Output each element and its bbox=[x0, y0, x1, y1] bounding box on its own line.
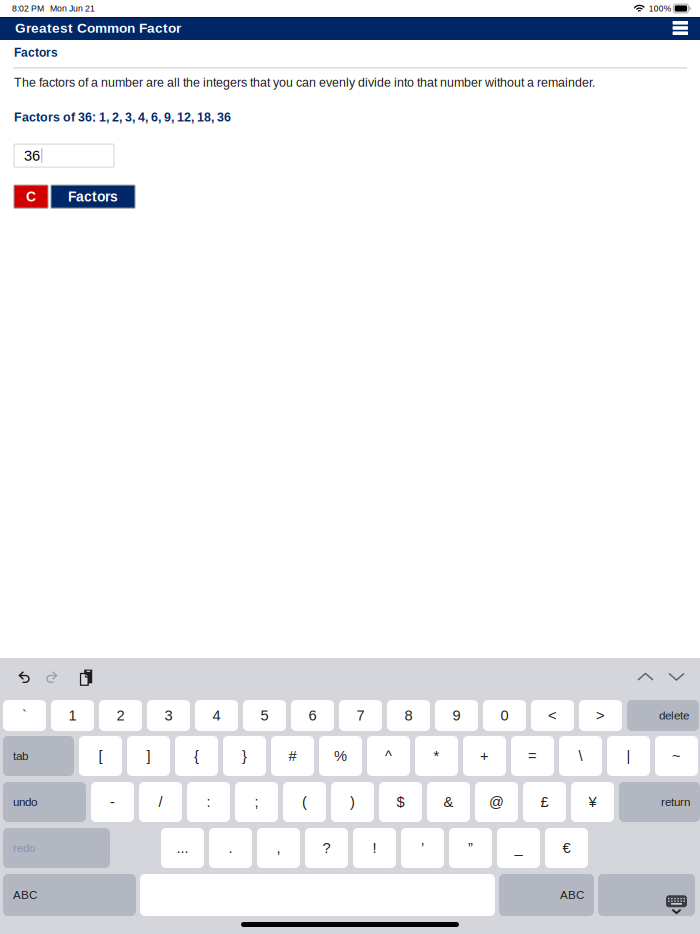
button[interactable]: | bbox=[607, 736, 650, 776]
button[interactable]: 8 bbox=[387, 700, 430, 731]
button[interactable]: # bbox=[271, 736, 314, 776]
button[interactable]: ^ bbox=[367, 736, 410, 776]
staticText: * bbox=[433, 748, 439, 764]
button[interactable]: Hide keyboard bbox=[598, 874, 695, 916]
staticText: 0 bbox=[500, 707, 508, 724]
staticText: ( bbox=[302, 794, 307, 810]
button[interactable]: _ bbox=[497, 828, 540, 868]
button[interactable]: 4 bbox=[195, 700, 238, 731]
button[interactable]: Paste bbox=[79, 666, 94, 687]
button[interactable]: Redo bbox=[45, 670, 58, 683]
button[interactable]: ] bbox=[127, 736, 170, 776]
button[interactable]: tab bbox=[3, 736, 74, 776]
staticText: + bbox=[480, 748, 489, 764]
button[interactable]: > bbox=[579, 700, 622, 731]
button[interactable]: ... bbox=[161, 828, 204, 868]
button[interactable]: < bbox=[531, 700, 574, 731]
button[interactable]: ) bbox=[331, 782, 374, 822]
button[interactable]: Previous field bbox=[637, 672, 653, 682]
staticText: ] bbox=[146, 748, 150, 764]
staticText: | bbox=[626, 748, 630, 764]
staticText: { bbox=[194, 748, 199, 764]
staticText: 8 bbox=[404, 707, 412, 724]
button[interactable]: Next field bbox=[668, 672, 684, 682]
button[interactable]: } bbox=[223, 736, 266, 776]
button[interactable]: = bbox=[511, 736, 554, 776]
button[interactable]: : bbox=[187, 782, 230, 822]
button[interactable]: + bbox=[463, 736, 506, 776]
button[interactable]: return bbox=[619, 782, 700, 822]
button[interactable]: \ bbox=[559, 736, 602, 776]
staticText: 5 bbox=[260, 707, 268, 724]
button[interactable]: ’ bbox=[401, 828, 444, 868]
button[interactable]: $ bbox=[379, 782, 422, 822]
button[interactable]: 3 bbox=[147, 700, 190, 731]
button[interactable]: ( bbox=[283, 782, 326, 822]
button[interactable]: ! bbox=[353, 828, 396, 868]
staticText: ; bbox=[254, 794, 258, 810]
button[interactable]: € bbox=[545, 828, 588, 868]
button[interactable]: ? bbox=[305, 828, 348, 868]
button[interactable]: undo bbox=[3, 782, 86, 822]
button[interactable]: * bbox=[415, 736, 458, 776]
button[interactable]: 1 bbox=[51, 700, 94, 731]
staticText: return bbox=[661, 795, 690, 808]
staticText: ” bbox=[468, 840, 473, 856]
staticText: 3 bbox=[164, 707, 172, 724]
staticText: ` bbox=[22, 707, 27, 724]
staticText: # bbox=[288, 748, 296, 764]
staticText: / bbox=[158, 794, 162, 810]
button[interactable]: ; bbox=[235, 782, 278, 822]
button[interactable]: 9 bbox=[435, 700, 478, 731]
staticText: } bbox=[242, 748, 247, 764]
staticText: 6 bbox=[308, 707, 316, 724]
button[interactable]: . bbox=[209, 828, 252, 868]
button[interactable]: Menu bbox=[668, 17, 692, 39]
staticText: ABC bbox=[560, 888, 584, 901]
staticText: $ bbox=[396, 794, 404, 810]
button[interactable]: 6 bbox=[291, 700, 334, 731]
staticText: ^ bbox=[385, 748, 392, 764]
staticText: tab bbox=[13, 749, 28, 762]
button[interactable]: ABC bbox=[3, 874, 136, 916]
staticText: redo bbox=[13, 841, 35, 854]
staticText: 7 bbox=[356, 707, 364, 724]
staticText: [ bbox=[98, 748, 102, 764]
staticText: ! bbox=[372, 840, 376, 856]
button[interactable]: delete bbox=[627, 700, 699, 731]
staticText: ABC bbox=[13, 888, 37, 901]
staticText: 1 bbox=[68, 707, 76, 724]
button[interactable]: £ bbox=[523, 782, 566, 822]
staticText: , bbox=[276, 840, 280, 856]
staticText: 100% bbox=[649, 4, 671, 13]
staticText: £ bbox=[540, 794, 548, 810]
button[interactable]: Factors bbox=[51, 185, 135, 208]
button[interactable]: Undo bbox=[18, 670, 31, 683]
button[interactable]: C bbox=[14, 185, 48, 208]
staticText: ¥ bbox=[588, 794, 596, 810]
button[interactable]: - bbox=[91, 782, 134, 822]
button[interactable]: ABC bbox=[499, 874, 594, 916]
button[interactable]: 7 bbox=[339, 700, 382, 731]
button[interactable]: ” bbox=[449, 828, 492, 868]
button[interactable]: 2 bbox=[99, 700, 142, 731]
button[interactable]: , bbox=[257, 828, 300, 868]
button[interactable]: 5 bbox=[243, 700, 286, 731]
button[interactable]: redo bbox=[3, 828, 110, 868]
button[interactable]: ~ bbox=[655, 736, 698, 776]
button[interactable]: @ bbox=[475, 782, 518, 822]
button[interactable]: ` bbox=[3, 700, 46, 731]
button[interactable]: & bbox=[427, 782, 470, 822]
staticText: Factors bbox=[68, 189, 118, 204]
staticText: & bbox=[443, 794, 453, 810]
button[interactable]: { bbox=[175, 736, 218, 776]
staticText: % bbox=[334, 748, 347, 764]
button[interactable]: [ bbox=[79, 736, 122, 776]
button[interactable]: / bbox=[139, 782, 182, 822]
button[interactable]: % bbox=[319, 736, 362, 776]
staticText: 2 bbox=[116, 707, 124, 724]
button[interactable]: 0 bbox=[483, 700, 526, 731]
staticText: @ bbox=[489, 794, 504, 810]
button[interactable]: ¥ bbox=[571, 782, 614, 822]
